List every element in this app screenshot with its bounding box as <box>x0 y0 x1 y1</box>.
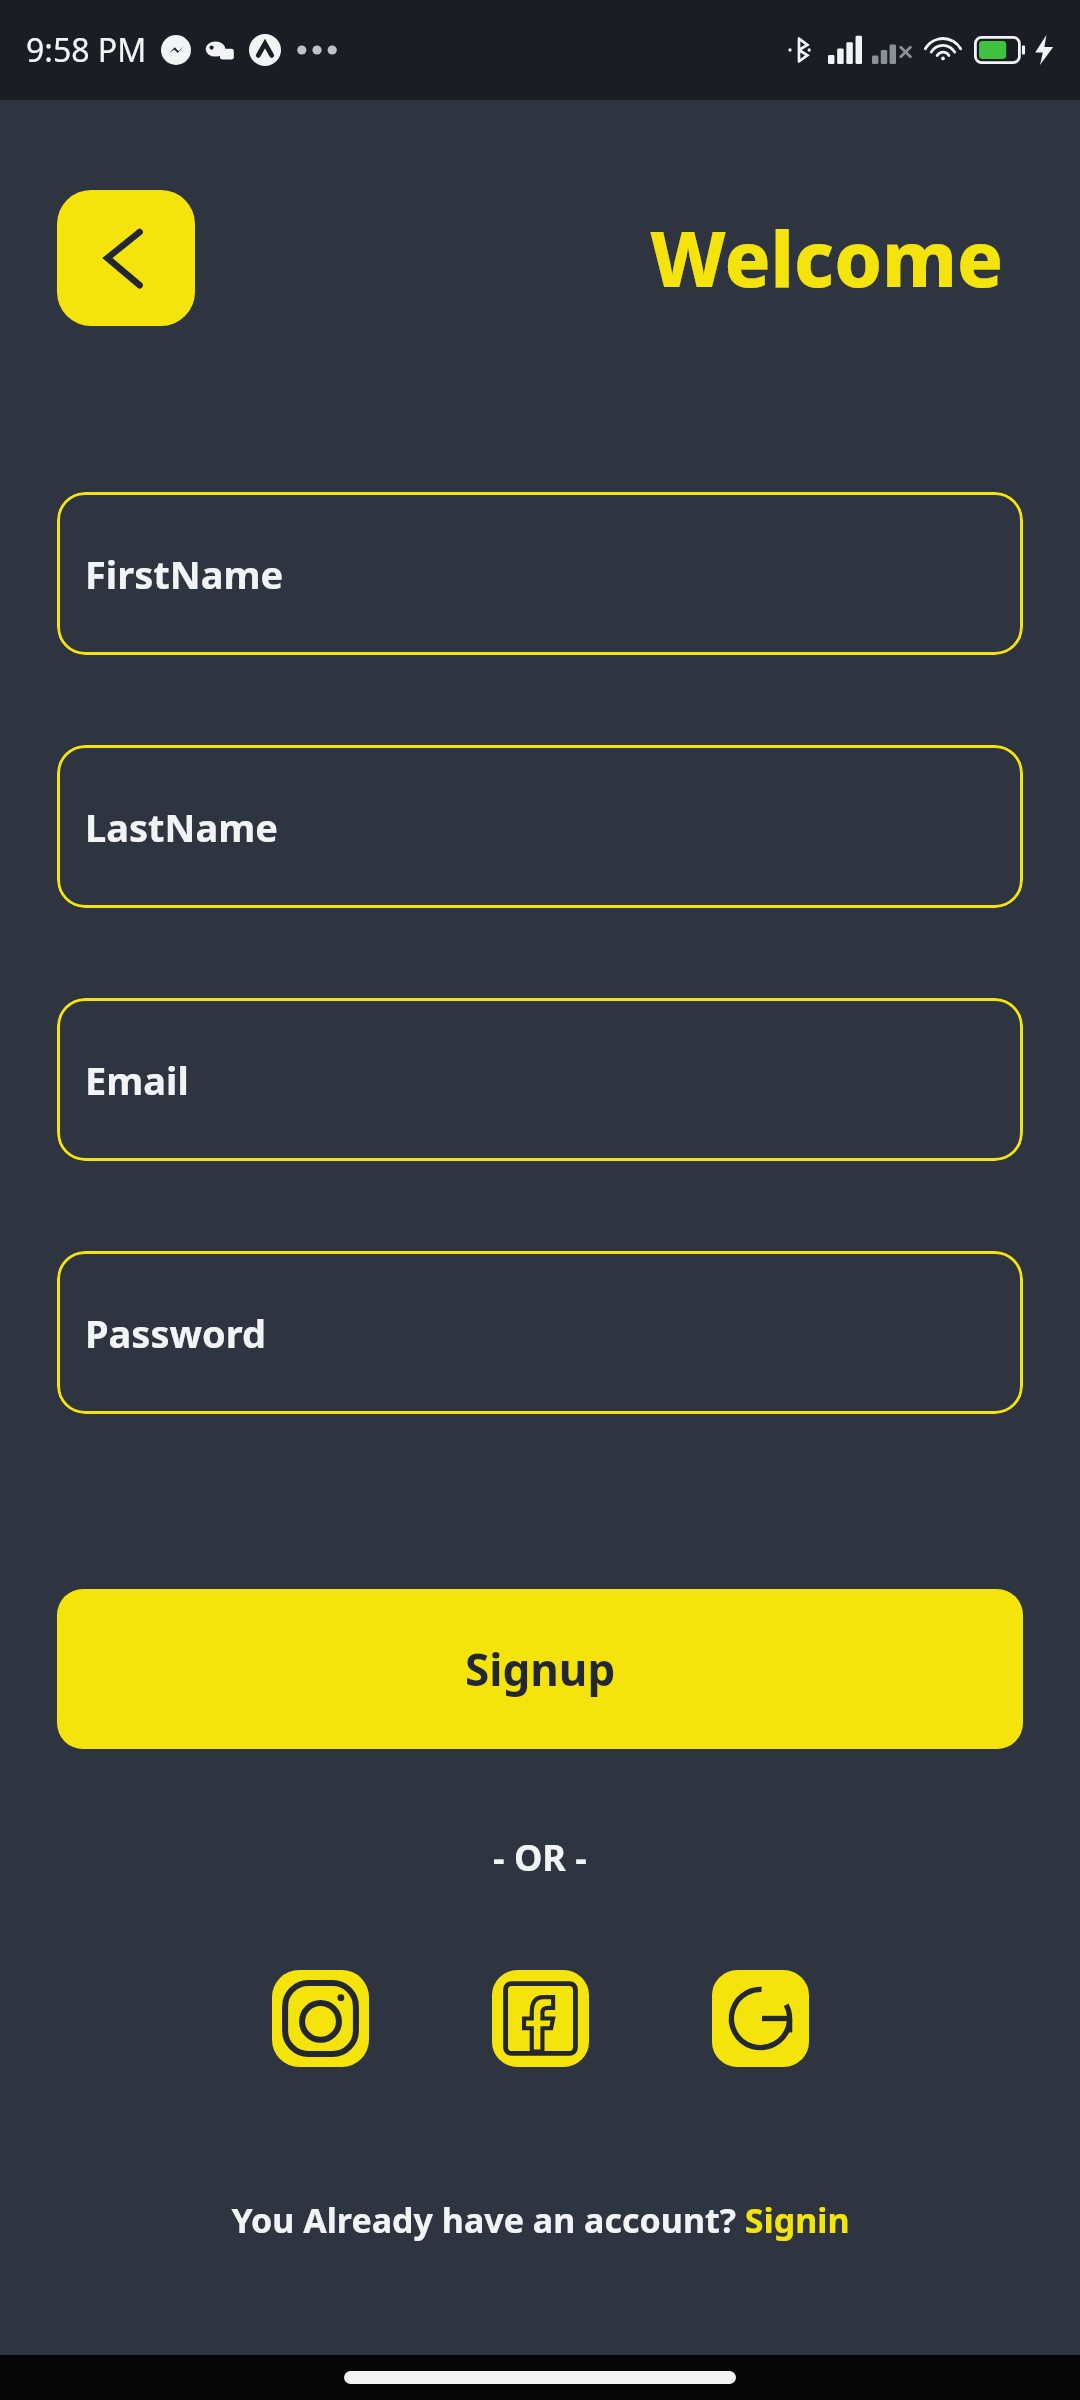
button[interactable]: Signup <box>57 1589 1023 1749</box>
button[interactable]: LastName <box>57 745 1023 908</box>
button[interactable]: Instagram <box>272 1970 369 2067</box>
staticText: Email <box>85 1054 189 1106</box>
button[interactable]: Password <box>57 1251 1023 1414</box>
staticText: FirstName <box>85 548 284 600</box>
button[interactable]: Facebook <box>492 1970 589 2067</box>
staticText: 9:58 PM <box>26 28 147 72</box>
button[interactable]: Email <box>57 998 1023 1161</box>
staticText: Signup <box>465 1639 616 1699</box>
staticText: You Already have an account? Signin <box>231 2197 850 2243</box>
staticText: Password <box>85 1307 267 1359</box>
staticText: LastName <box>85 801 278 853</box>
button[interactable]: Back <box>57 190 195 326</box>
button[interactable]: Google <box>712 1970 809 2067</box>
staticText: - OR - <box>493 1833 587 1882</box>
button[interactable]: You Already have an account? Signin <box>0 2197 1080 2243</box>
button[interactable]: FirstName <box>57 492 1023 655</box>
staticText: Welcome <box>650 206 1004 310</box>
